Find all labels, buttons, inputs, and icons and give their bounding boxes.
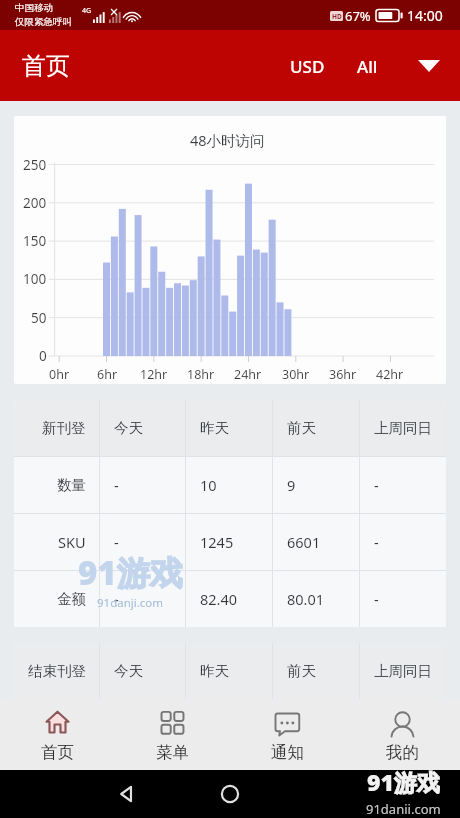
staticText: 数量 <box>57 476 86 494</box>
staticText: 上周同日 <box>374 419 432 437</box>
staticText: - <box>374 475 379 495</box>
staticText: 6hr <box>97 366 118 383</box>
staticText: 91danji.com <box>366 800 441 814</box>
staticText: 通知 <box>271 742 304 763</box>
button[interactable]: Expand filters <box>403 38 455 94</box>
staticText: 首页 <box>22 51 70 81</box>
staticText: - <box>114 475 119 495</box>
staticText: 金额 <box>57 590 86 608</box>
staticText: 今天 <box>114 662 143 680</box>
staticText: 80.01 <box>287 589 325 609</box>
staticText: 82.40 <box>200 589 238 609</box>
staticText: 18hr <box>187 366 215 383</box>
staticText: 91游戏 <box>367 766 440 797</box>
staticText: - <box>374 532 379 552</box>
staticText: 91danji.com <box>97 595 164 611</box>
button[interactable]: 我的 <box>345 699 460 770</box>
button[interactable]: Back <box>112 779 142 809</box>
staticText: 91游戏 <box>78 550 183 595</box>
staticText: 前天 <box>287 662 316 680</box>
staticText: 今天 <box>114 419 143 437</box>
staticText: All <box>357 55 378 78</box>
staticText: 24hr <box>234 366 262 383</box>
staticText: 前天 <box>287 419 316 437</box>
staticText: HD <box>332 12 342 21</box>
staticText: SKU <box>58 532 86 552</box>
staticText: 14:00 <box>407 6 443 25</box>
staticText: 36hr <box>329 366 357 383</box>
staticText: 我的 <box>386 742 419 763</box>
staticText: 结束刊登 <box>28 662 86 680</box>
staticText: 1245 <box>200 532 234 552</box>
button[interactable]: 通知 <box>230 699 345 770</box>
staticText: 48小时访问 <box>190 130 265 150</box>
staticText: 50 <box>31 309 47 327</box>
staticText: 250 <box>23 156 47 174</box>
staticText: - <box>114 589 119 609</box>
button[interactable]: 首页 <box>0 699 115 770</box>
staticText: 12hr <box>140 366 168 383</box>
button[interactable]: 菜单 <box>115 699 230 770</box>
button[interactable]: Home <box>215 779 245 809</box>
staticText: 0hr <box>49 366 70 383</box>
staticText: 200 <box>23 194 47 212</box>
staticText: 4G <box>82 6 92 16</box>
button[interactable]: All <box>343 40 391 92</box>
staticText: 6601 <box>287 532 321 552</box>
staticText: 0 <box>39 347 47 365</box>
staticText: 67% <box>345 7 371 25</box>
staticText: 30hr <box>282 366 310 383</box>
staticText: 100 <box>23 270 47 288</box>
staticText: USD <box>290 55 325 78</box>
staticText: 仅限紧急呼叫 <box>15 16 72 28</box>
staticText: 9 <box>287 475 296 495</box>
staticText: 昨天 <box>200 419 229 437</box>
staticText: 昨天 <box>200 662 229 680</box>
staticText: 42hr <box>376 366 404 383</box>
staticText: 新刊登 <box>42 419 86 437</box>
staticText: 150 <box>23 232 47 250</box>
staticText: - <box>374 589 379 609</box>
staticText: 菜单 <box>156 742 189 763</box>
staticText: - <box>114 532 119 552</box>
staticText: 10 <box>200 475 217 495</box>
button[interactable]: USD <box>275 40 339 92</box>
staticText: 首页 <box>41 742 74 763</box>
staticText: 中国移动 <box>15 2 53 14</box>
staticText: 上周同日 <box>374 662 432 680</box>
